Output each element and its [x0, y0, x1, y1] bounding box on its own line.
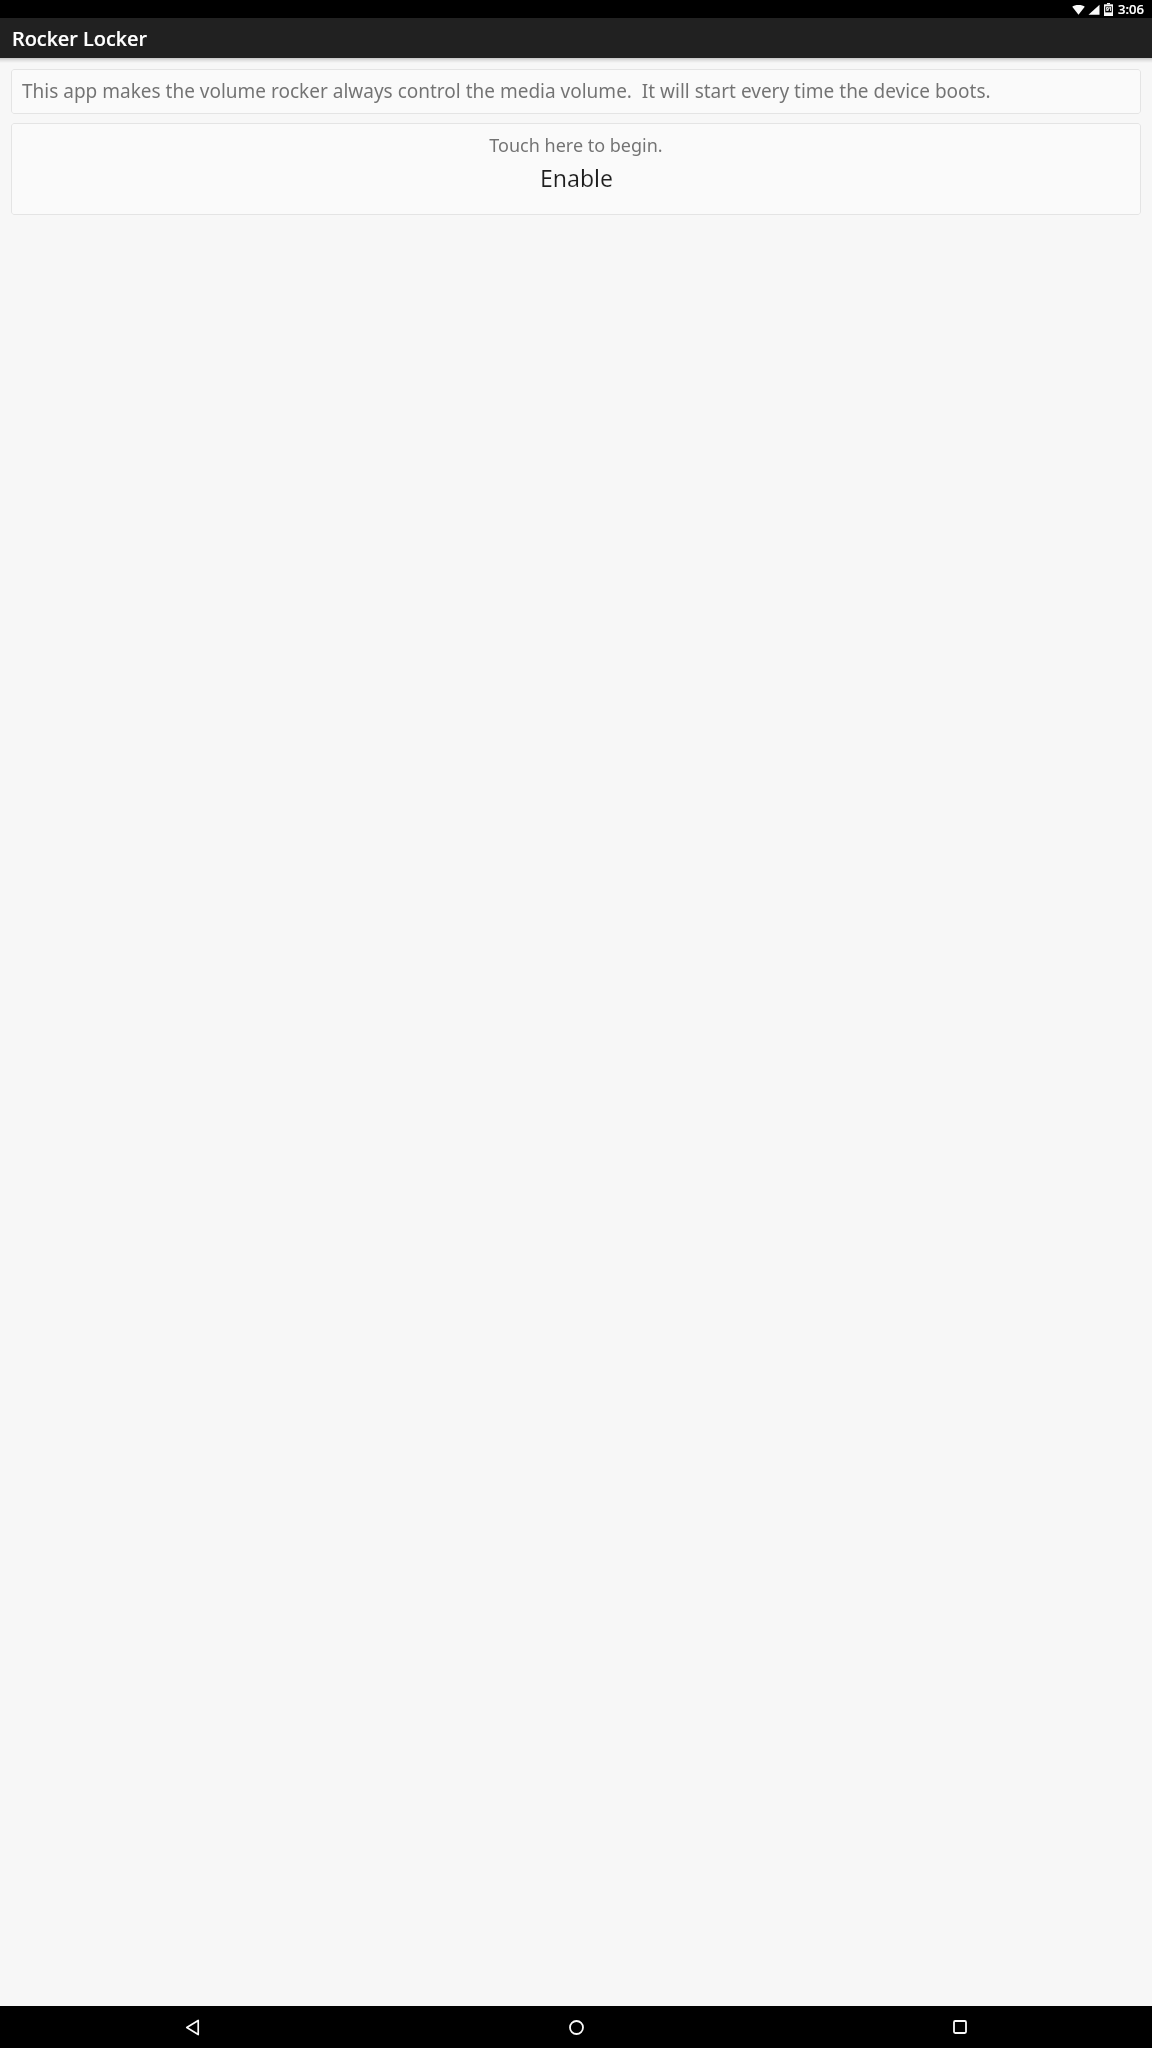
staticText: 91: [1106, 6, 1112, 13]
staticText: Touch here to begin.: [489, 133, 663, 158]
button[interactable]: Home: [384, 2006, 768, 2048]
staticText: Enable: [540, 162, 613, 193]
staticText: 3:06: [1118, 0, 1144, 18]
button[interactable]: Back: [0, 2006, 384, 2048]
staticText: Rocker Locker: [12, 25, 147, 52]
button[interactable]: Touch here to begin.: [11, 123, 1141, 215]
staticText: This app makes the volume rocker always …: [22, 78, 1130, 104]
button[interactable]: Recent apps: [768, 2006, 1152, 2048]
